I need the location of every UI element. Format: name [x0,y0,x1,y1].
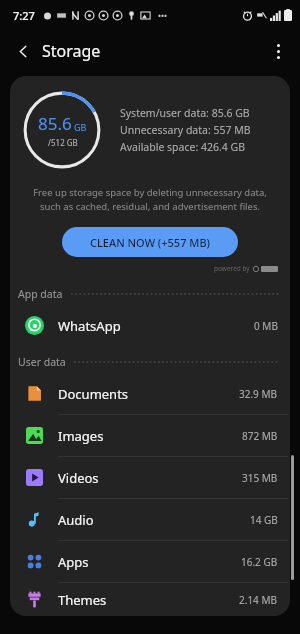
staticText: /512 GB [48,137,78,148]
button[interactable]: Images [10,415,290,456]
button[interactable]: Documents [10,373,290,414]
staticText: App data [18,287,63,301]
staticText: Themes [58,591,107,609]
staticText: WhatsApp [58,317,121,335]
staticText: powered by [214,264,250,273]
staticText: 14 GB [250,513,278,527]
staticText: Images [58,427,104,445]
staticText: 7:27 [13,8,35,23]
button[interactable]: More options [261,34,295,68]
staticText: 0 MB [254,319,278,333]
staticText: Apps [58,553,89,571]
button[interactable]: Back [6,34,40,68]
button[interactable]: CLEAN NOW (+557 MB) [62,227,238,257]
staticText: 85.6 [38,112,72,135]
button[interactable]: Videos [10,457,290,498]
staticText: CLEAN NOW (+557 MB) [90,235,211,250]
staticText: Free up storage space by deleting unnece… [24,186,276,213]
staticText: 16.2 GB [241,555,278,569]
staticText: Unnecessary data: 557 MB [120,123,251,137]
button[interactable]: Audio [10,499,290,540]
staticText: Available space: 426.4 GB [120,140,245,154]
staticText: 315 MB [242,471,278,485]
staticText: ••• [158,10,168,21]
staticText: 32.9 MB [239,387,278,401]
staticText: System/user data: 85.6 GB [120,106,250,120]
staticText: GB [74,121,87,133]
staticText: Storage [42,40,101,62]
staticText: 2.14 MB [239,593,278,607]
button[interactable]: Themes [10,583,290,616]
button[interactable]: Apps [10,541,290,582]
staticText: User data [18,355,66,369]
staticText: Videos [58,469,99,487]
button[interactable]: WhatsApp [10,305,290,346]
staticText: Audio [58,511,94,529]
staticText: 872 MB [242,429,278,443]
staticText: Documents [58,385,129,403]
